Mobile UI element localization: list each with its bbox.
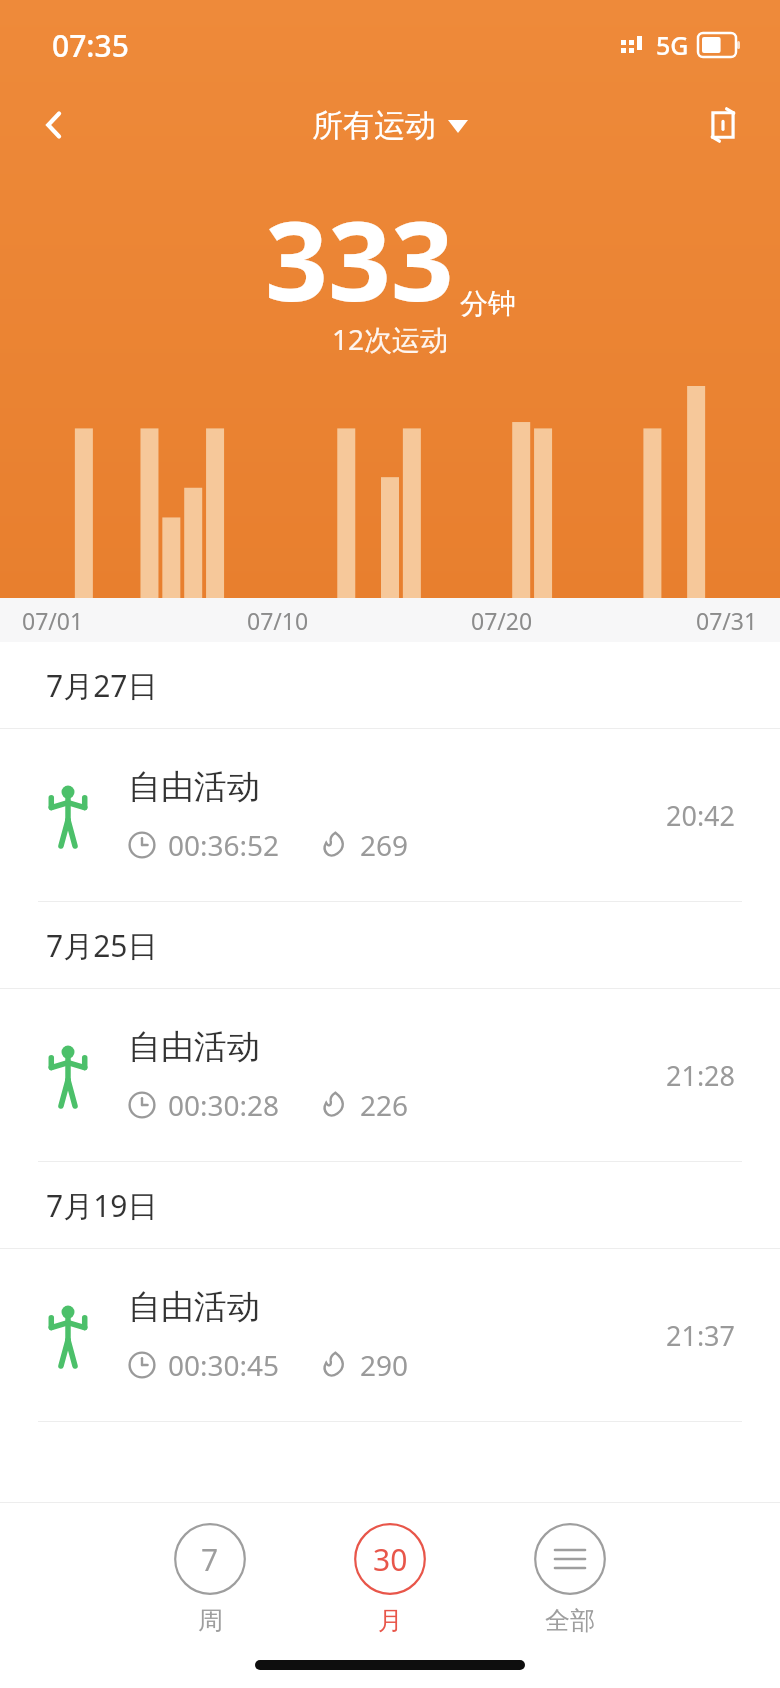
- staticText: 自由活动: [128, 1026, 260, 1068]
- staticText: 5G: [656, 28, 689, 62]
- staticText: 自由活动: [128, 1286, 260, 1328]
- staticText: 226: [360, 1086, 409, 1124]
- button[interactable]: 所有运动: [302, 100, 478, 151]
- staticText: 00:36:52: [168, 826, 280, 864]
- staticText: 自由活动: [128, 766, 260, 808]
- staticText: 30: [373, 1539, 408, 1580]
- button[interactable]: 自由活动: [0, 729, 780, 901]
- staticText: 20:42: [666, 797, 736, 834]
- staticText: 所有运动: [312, 106, 436, 145]
- staticText: 分钟: [460, 286, 516, 321]
- staticText: 07/01: [22, 605, 84, 636]
- button[interactable]: Back: [24, 94, 86, 156]
- button[interactable]: 30: [300, 1519, 480, 1640]
- staticText: 07/20: [471, 605, 533, 636]
- staticText: 7: [201, 1539, 219, 1580]
- staticText: 7月27日: [46, 665, 158, 706]
- staticText: 21:28: [666, 1057, 736, 1094]
- button[interactable]: 7: [120, 1519, 300, 1640]
- button[interactable]: Sync: [692, 94, 754, 156]
- staticText: 21:37: [666, 1317, 736, 1354]
- staticText: 12次运动: [332, 320, 449, 358]
- staticText: 7月25日: [46, 925, 158, 966]
- staticText: 月: [378, 1605, 403, 1636]
- staticText: 269: [360, 826, 409, 864]
- staticText: 290: [360, 1346, 409, 1384]
- staticText: 07/31: [696, 605, 758, 636]
- staticText: 07/10: [247, 605, 309, 636]
- button[interactable]: 自由活动: [0, 1249, 780, 1421]
- staticText: 7月19日: [46, 1185, 158, 1226]
- staticText: 333: [265, 183, 454, 333]
- button[interactable]: 自由活动: [0, 989, 780, 1161]
- staticText: 07:35: [52, 25, 129, 66]
- staticText: 全部: [545, 1605, 595, 1636]
- staticText: 周: [198, 1605, 223, 1636]
- staticText: 00:30:28: [168, 1086, 280, 1124]
- button[interactable]: 全部: [480, 1519, 660, 1640]
- staticText: 00:30:45: [168, 1346, 280, 1384]
